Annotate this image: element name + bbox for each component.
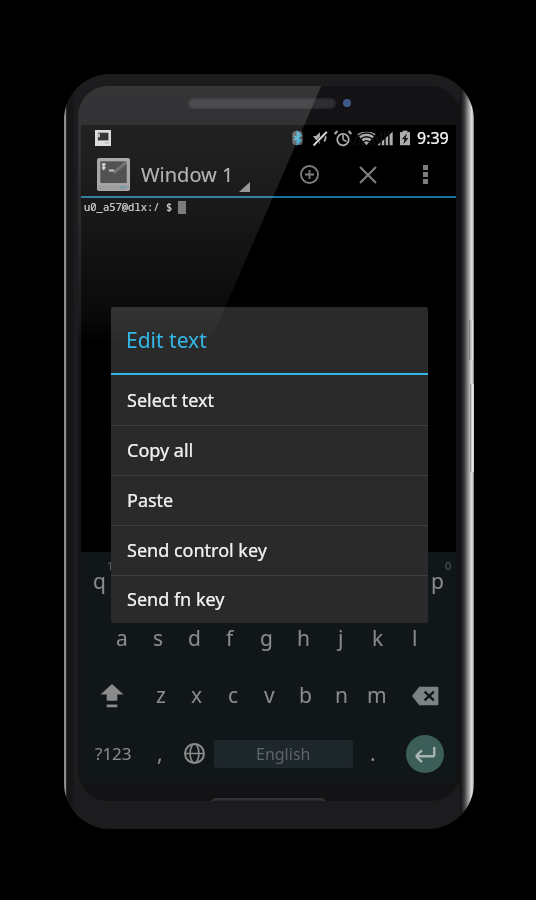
- staticText: h: [297, 624, 310, 653]
- staticText: Copy all: [127, 438, 194, 463]
- staticText: Select text: [127, 388, 214, 413]
- button[interactable]: New window: [281, 151, 337, 198]
- staticText: p: [431, 567, 444, 596]
- button[interactable]: More options: [401, 151, 449, 198]
- staticText: m: [367, 681, 387, 710]
- staticText: u: [317, 567, 330, 596]
- staticText: n: [335, 681, 348, 710]
- staticText: l: [412, 624, 418, 653]
- button[interactable]: Window 1: [81, 151, 456, 198]
- button[interactable]: q: [81, 552, 118, 610]
- staticText: u0_a57@dlx:/ $: [84, 200, 173, 214]
- staticText: 5: [255, 558, 262, 573]
- button[interactable]: Copy all: [111, 426, 428, 475]
- staticText: Edit text: [126, 326, 207, 355]
- button[interactable]: k: [359, 610, 396, 667]
- staticText: w: [128, 567, 145, 596]
- button[interactable]: ?123: [81, 724, 145, 783]
- button[interactable]: Send fn key: [111, 576, 428, 623]
- button[interactable]: .: [353, 724, 393, 783]
- staticText: v: [264, 681, 275, 710]
- button[interactable]: Close window: [340, 151, 396, 198]
- staticText: d: [188, 624, 201, 653]
- button[interactable]: g: [248, 610, 285, 667]
- staticText: Paste: [127, 488, 174, 513]
- button[interactable]: c: [215, 667, 251, 724]
- staticText: f: [226, 624, 234, 653]
- staticText: ?123: [95, 742, 132, 765]
- staticText: y: [280, 567, 291, 596]
- staticText: c: [228, 681, 239, 710]
- button[interactable]: Delete: [395, 667, 456, 724]
- button[interactable]: r: [192, 552, 229, 610]
- button[interactable]: m: [359, 667, 395, 724]
- button[interactable]: Send control key: [111, 526, 428, 575]
- staticText: z: [156, 681, 166, 710]
- button[interactable]: h: [285, 610, 322, 667]
- staticText: ,: [157, 739, 163, 768]
- button[interactable]: t: [229, 552, 266, 610]
- staticText: s: [153, 624, 164, 653]
- staticText: t: [244, 567, 252, 596]
- staticText: e: [168, 567, 180, 596]
- button[interactable]: Enter: [406, 735, 444, 773]
- staticText: 1: [107, 558, 114, 573]
- button[interactable]: e: [155, 552, 192, 610]
- button[interactable]: j: [322, 610, 359, 667]
- button[interactable]: Change language: [174, 724, 214, 783]
- staticText: g: [260, 624, 273, 653]
- button[interactable]: Select text: [111, 375, 428, 425]
- button[interactable]: p: [418, 552, 456, 610]
- button[interactable]: l: [396, 610, 433, 667]
- button[interactable]: w: [118, 552, 155, 610]
- staticText: 0: [445, 558, 452, 573]
- button[interactable]: z: [142, 667, 179, 724]
- staticText: j: [338, 624, 344, 653]
- staticText: Send fn key: [127, 587, 225, 612]
- staticText: a: [116, 624, 128, 653]
- staticText: Send control key: [127, 538, 267, 563]
- staticText: .: [370, 739, 376, 768]
- button[interactable]: English: [214, 740, 353, 768]
- staticText: k: [372, 624, 384, 653]
- button[interactable]: s: [140, 610, 176, 667]
- button[interactable]: Paste: [111, 476, 428, 525]
- button[interactable]: x: [179, 667, 215, 724]
- staticText: x: [191, 681, 203, 710]
- staticText: i: [358, 567, 364, 596]
- staticText: r: [206, 567, 215, 596]
- button[interactable]: f: [212, 610, 248, 667]
- staticText: o: [393, 567, 406, 596]
- staticText: b: [299, 681, 312, 710]
- button[interactable]: a: [104, 610, 140, 667]
- button[interactable]: v: [251, 667, 287, 724]
- button[interactable]: d: [176, 610, 212, 667]
- button[interactable]: Shift: [81, 667, 142, 724]
- staticText: 9:39: [417, 127, 449, 149]
- button[interactable]: n: [323, 667, 359, 724]
- staticText: Window 1: [141, 161, 234, 188]
- staticText: English: [256, 743, 311, 765]
- button[interactable]: b: [287, 667, 323, 724]
- staticText: q: [93, 567, 106, 596]
- button[interactable]: ,: [145, 724, 174, 783]
